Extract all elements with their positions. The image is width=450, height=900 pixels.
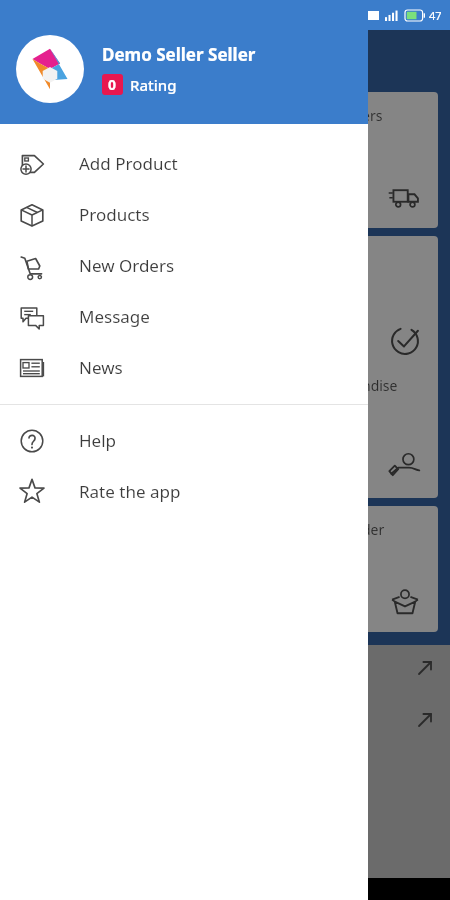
button[interactable]: News [0,342,368,393]
button[interactable]: LOGOUT [0,832,450,878]
button[interactable]: Rate the app [0,466,368,517]
button[interactable]: Message [0,291,368,342]
button[interactable]: Help [0,415,368,466]
staticText: New Orders [79,254,175,277]
staticText: News [79,356,123,379]
staticText: ndise [362,376,398,395]
staticText: Add Product [79,152,178,175]
staticText: 47 [429,8,442,23]
staticText: Rating [130,75,177,95]
staticText: Demo Seller Seller [102,43,256,66]
button[interactable]: Products [0,189,368,240]
staticText: der [362,520,385,539]
button[interactable]: der [300,506,438,632]
button[interactable] [300,236,438,372]
button[interactable]: ers [300,92,438,228]
staticText: 0 [108,75,117,94]
staticText: ers [362,106,383,125]
button[interactable]: Add Product [0,138,368,189]
staticText: Rate the app [79,480,181,503]
staticText: Products [79,203,150,226]
button[interactable]: New Orders [0,240,368,291]
staticText: Message [79,305,150,328]
button[interactable]: ndise [300,362,438,498]
staticText: Help [79,429,117,452]
